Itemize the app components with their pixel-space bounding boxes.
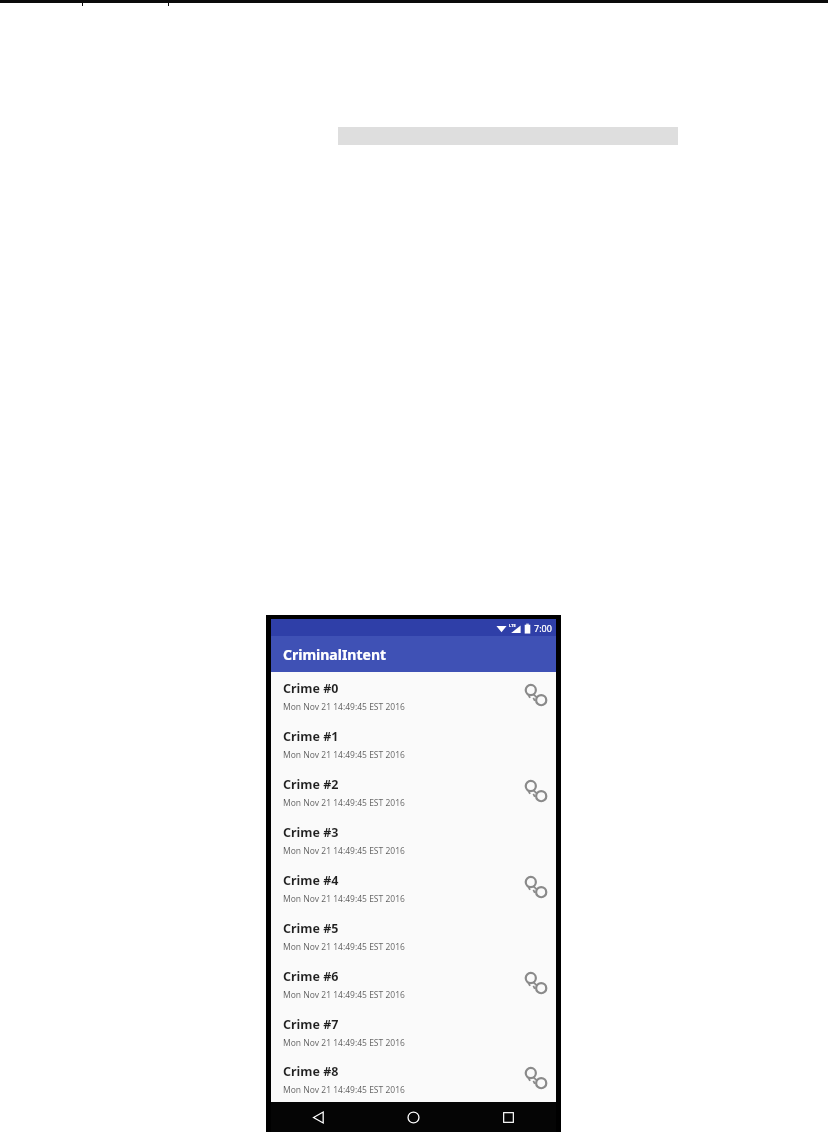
staticText: Mon Nov 21 14:49:45 EST 2016 (283, 941, 405, 953)
button[interactable]: Crime #3 (271, 816, 556, 864)
button[interactable]: Crime solved (519, 679, 553, 713)
staticText: Mon Nov 21 14:49:45 EST 2016 (283, 797, 405, 809)
staticText: Crime #8 (283, 1063, 339, 1080)
staticText: Mon Nov 21 14:49:45 EST 2016 (283, 1084, 405, 1096)
staticText: Mon Nov 21 14:49:45 EST 2016 (283, 1037, 405, 1049)
button[interactable]: Crime #4 (271, 864, 556, 912)
button[interactable]: Crime #5 (271, 912, 556, 960)
button[interactable]: Crime #6 (271, 960, 556, 1008)
staticText: CriminalIntent (283, 645, 387, 664)
button[interactable]: Back (271, 1102, 366, 1132)
staticText: Crime #6 (283, 968, 339, 985)
staticText: Crime #3 (283, 824, 339, 841)
button[interactable]: Recent apps (461, 1102, 556, 1132)
staticText: Mon Nov 21 14:49:45 EST 2016 (283, 989, 405, 1001)
button[interactable]: Crime #2 (271, 768, 556, 816)
staticText: Mon Nov 21 14:49:45 EST 2016 (283, 749, 405, 761)
staticText: 7:00 (534, 622, 552, 634)
staticText: Crime #2 (283, 776, 339, 793)
staticText: Crime #0 (283, 680, 339, 697)
button[interactable]: Crime solved (519, 1062, 553, 1096)
staticText: Mon Nov 21 14:49:45 EST 2016 (283, 893, 405, 905)
button[interactable]: Crime #1 (271, 720, 556, 768)
button[interactable]: Crime solved (519, 775, 553, 809)
button[interactable]: CriminalIntent (271, 636, 556, 672)
staticText: LTE (509, 623, 516, 628)
staticText: Crime #1 (283, 728, 339, 745)
staticText: Mon Nov 21 14:49:45 EST 2016 (283, 845, 405, 857)
staticText: Crime #5 (283, 920, 339, 937)
button[interactable]: Crime solved (519, 871, 553, 905)
button[interactable]: Home (366, 1102, 461, 1132)
staticText: Crime #7 (283, 1016, 339, 1033)
button[interactable]: Crime solved (519, 967, 553, 1001)
button[interactable]: Crime #0 (271, 672, 556, 720)
button[interactable]: Crime #7 (271, 1008, 556, 1056)
staticText: Mon Nov 21 14:49:45 EST 2016 (283, 701, 405, 713)
button[interactable]: Crime #8 (271, 1056, 556, 1102)
staticText: Crime #4 (283, 872, 339, 889)
